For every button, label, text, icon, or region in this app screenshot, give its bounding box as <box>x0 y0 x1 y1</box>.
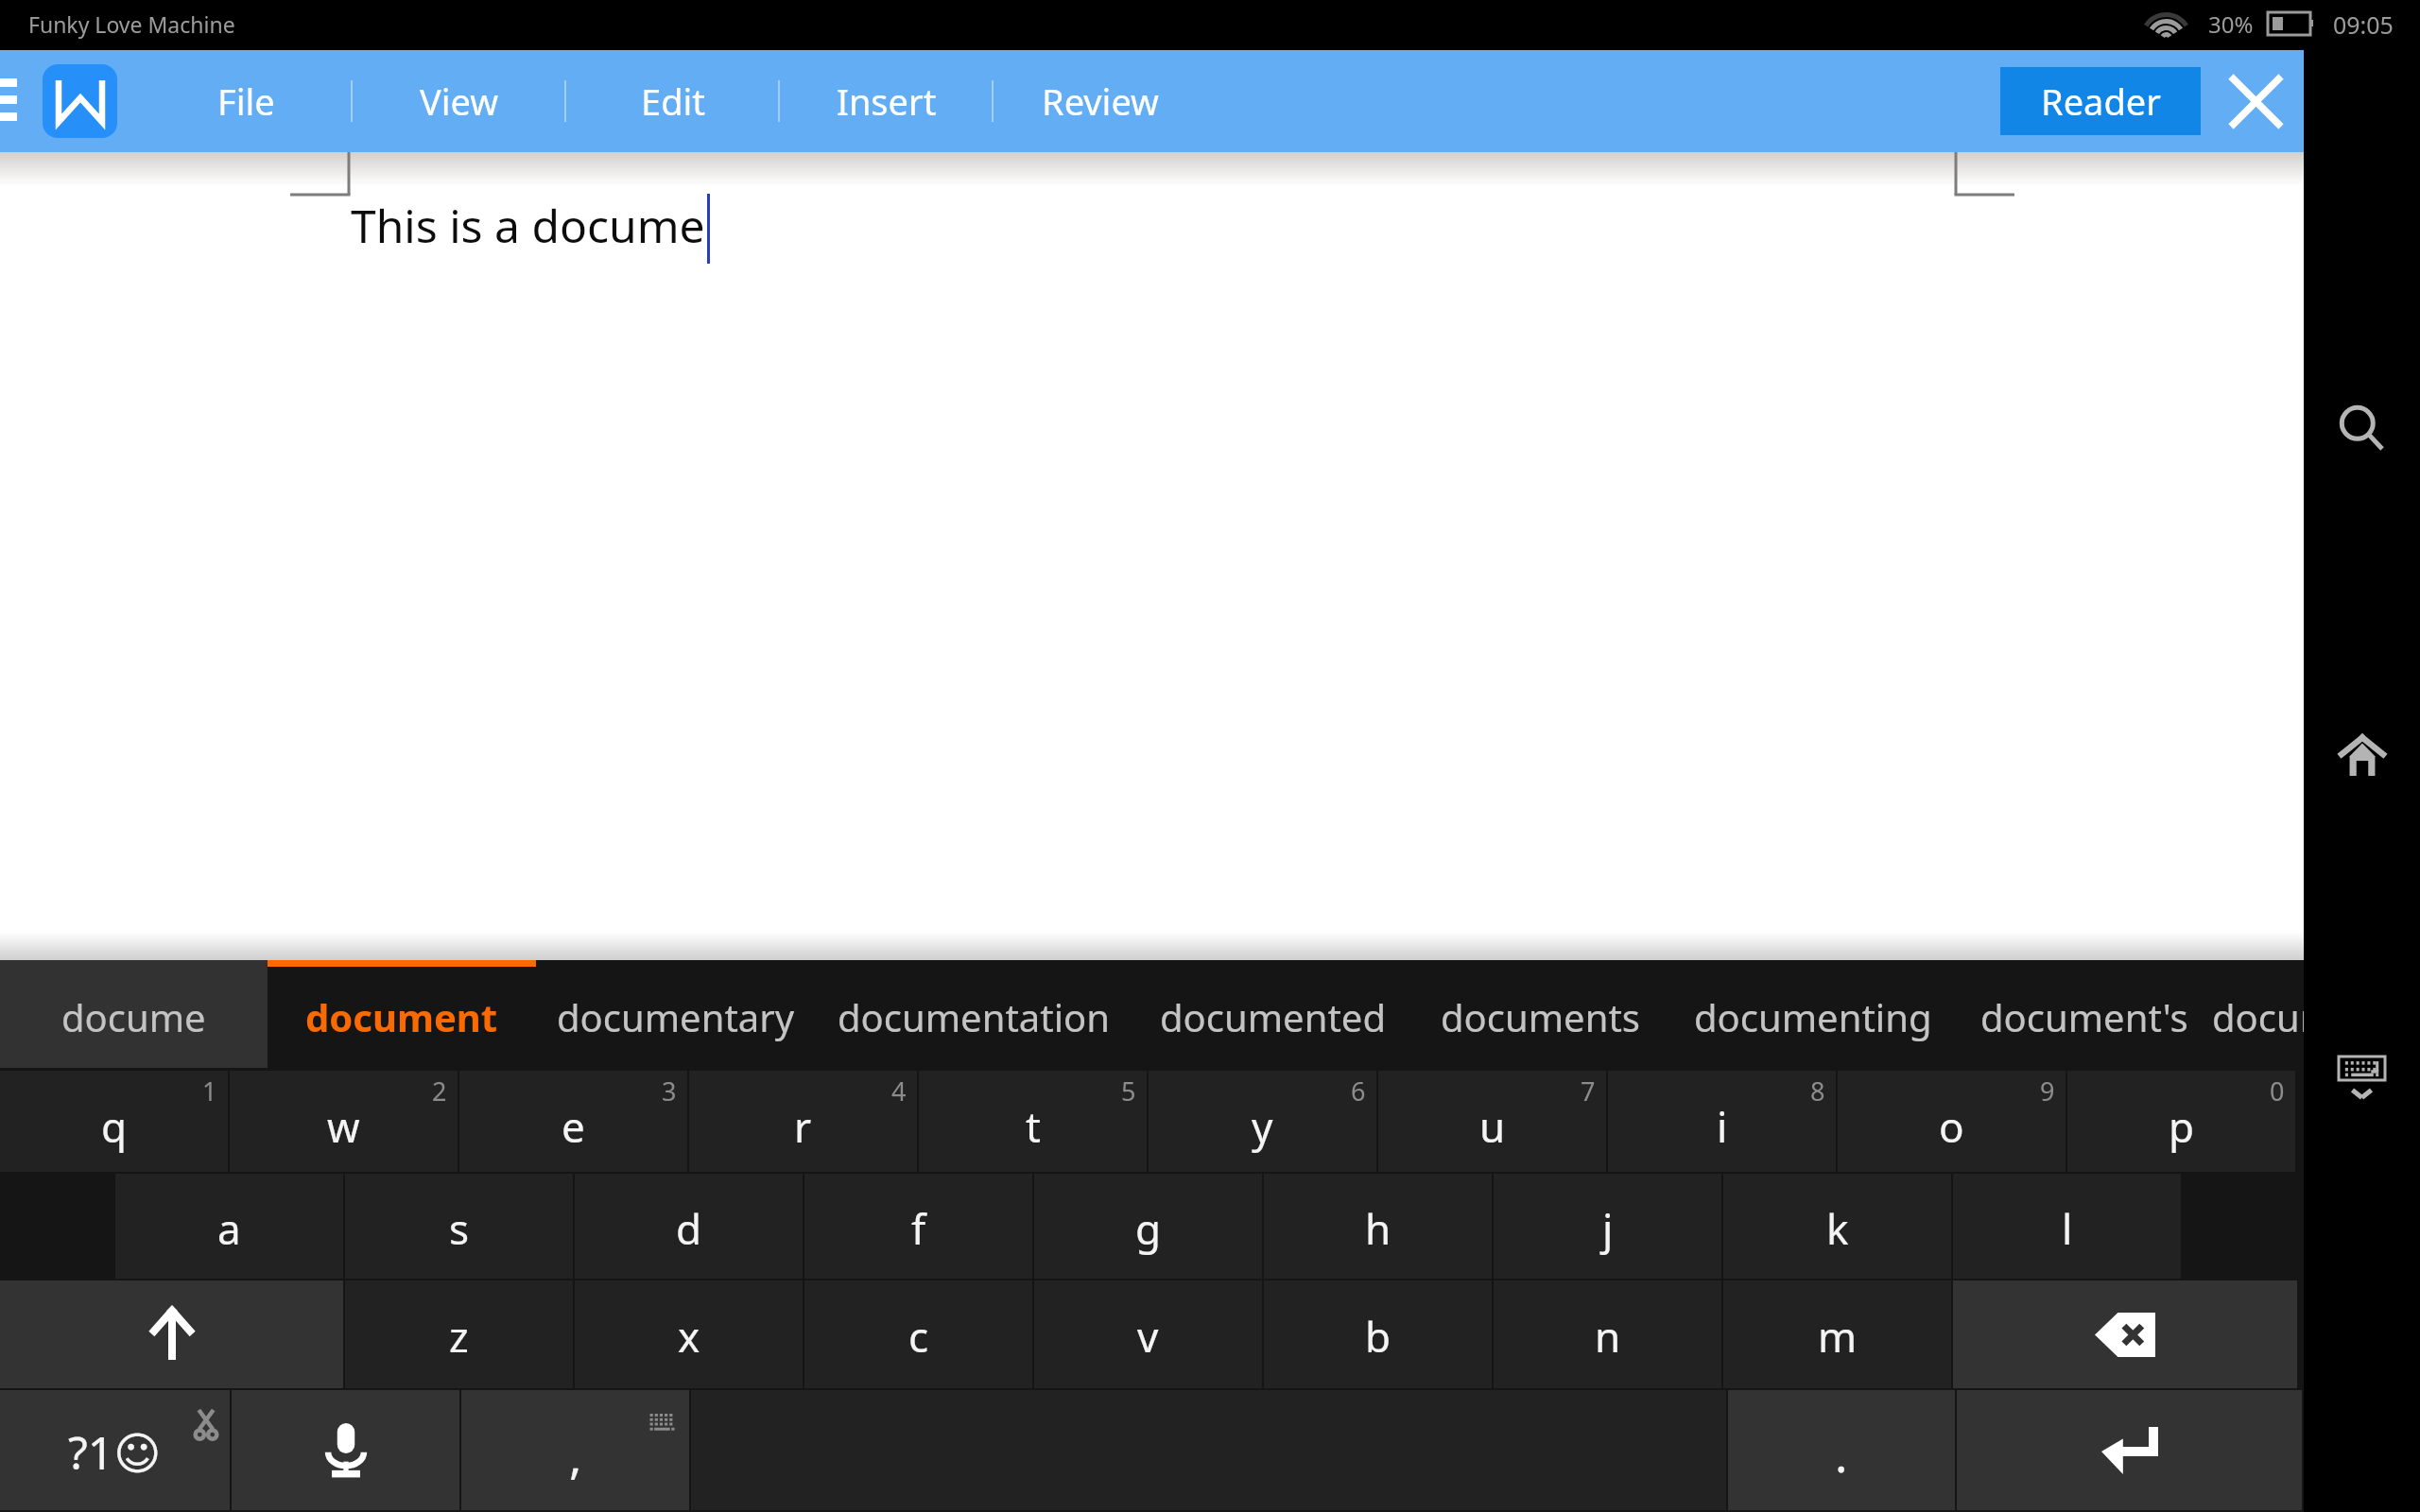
button[interactable]: j <box>1494 1174 1723 1280</box>
staticText: 7 <box>1581 1074 1596 1108</box>
button[interactable]: Insert <box>780 50 994 152</box>
button[interactable]: Review <box>994 50 1207 152</box>
button[interactable]: t <box>919 1071 1149 1174</box>
staticText: File <box>217 77 275 126</box>
staticText: 4 <box>891 1074 907 1108</box>
button[interactable]: d <box>575 1174 804 1280</box>
button[interactable]: documents <box>1412 960 1668 1068</box>
button[interactable]: e <box>459 1071 689 1174</box>
staticText: 8 <box>1810 1074 1825 1108</box>
button[interactable]: documented <box>1132 960 1412 1068</box>
staticText: 3 <box>662 1074 677 1108</box>
button[interactable]: m <box>1723 1280 1953 1390</box>
button[interactable]: Reader <box>2000 67 2201 135</box>
button[interactable]: n <box>1494 1280 1723 1390</box>
staticText: 2 <box>432 1074 447 1108</box>
button[interactable]: c <box>804 1280 1034 1390</box>
staticText: documenting <box>1694 991 1932 1042</box>
staticText: This is a docume <box>351 195 705 256</box>
button[interactable]: Menu <box>0 50 17 152</box>
button[interactable]: Hide keyboard <box>2304 1021 2420 1134</box>
staticText: e <box>562 1098 585 1155</box>
button[interactable]: z <box>345 1280 575 1390</box>
button[interactable]: o <box>1838 1071 2067 1174</box>
button[interactable]: documentation <box>815 960 1132 1068</box>
staticText: documented <box>1160 991 1386 1042</box>
staticText: 0 <box>2270 1074 2285 1108</box>
button[interactable]: documenting <box>1668 960 1957 1068</box>
button[interactable]: k <box>1723 1174 1953 1280</box>
button[interactable]: h <box>1264 1174 1494 1280</box>
button[interactable]: f <box>804 1174 1034 1280</box>
staticText: document's <box>1980 991 2188 1042</box>
staticText: w <box>327 1098 360 1155</box>
staticText: , <box>569 1424 582 1488</box>
button[interactable]: document's <box>1957 960 2212 1068</box>
button[interactable]: u <box>1378 1071 1608 1174</box>
staticText: l <box>2062 1200 2073 1257</box>
staticText: document <box>305 991 498 1042</box>
staticText: m <box>1818 1308 1858 1365</box>
button[interactable]: Close <box>2217 50 2294 152</box>
button[interactable]: y <box>1149 1071 1378 1174</box>
staticText: . <box>1835 1422 1848 1486</box>
staticText: z <box>449 1308 469 1365</box>
staticText: s <box>449 1200 470 1257</box>
button[interactable]: WPS Writer <box>43 64 117 138</box>
staticText: u <box>1479 1098 1506 1155</box>
staticText: 1 <box>202 1074 217 1108</box>
button[interactable]: docume <box>0 960 268 1068</box>
button[interactable]: Voice input <box>232 1390 461 1512</box>
staticText: o <box>1939 1098 1964 1155</box>
staticText: 09:05 <box>2333 9 2394 41</box>
button[interactable]: . <box>1728 1390 1957 1512</box>
button[interactable]: Symbols <box>0 1390 232 1512</box>
staticText: t <box>1026 1098 1041 1155</box>
button[interactable]: View <box>353 50 566 152</box>
button[interactable]: File <box>139 50 353 152</box>
staticText: Review <box>1042 77 1159 126</box>
button[interactable]: Home <box>2304 698 2420 812</box>
staticText: a <box>217 1200 241 1257</box>
staticText: 30% <box>2208 9 2254 40</box>
staticText: Insert <box>837 77 937 126</box>
button[interactable]: r <box>689 1071 919 1174</box>
button[interactable]: w <box>230 1071 459 1174</box>
button[interactable]: Backspace <box>1953 1280 2299 1390</box>
staticText: i <box>1717 1098 1728 1155</box>
staticText: r <box>794 1098 812 1155</box>
staticText: p <box>2169 1098 2195 1155</box>
button[interactable]: document <box>268 960 536 1068</box>
button[interactable]: documentary <box>536 960 815 1068</box>
staticText: q <box>101 1098 128 1155</box>
button[interactable]: a <box>115 1174 345 1280</box>
button[interactable]: s <box>345 1174 575 1280</box>
button[interactable]: x <box>575 1280 804 1390</box>
staticText: 5 <box>1121 1074 1136 1108</box>
button[interactable]: Enter <box>1957 1390 2304 1512</box>
staticText: g <box>1135 1200 1162 1257</box>
staticText: v <box>1137 1308 1159 1365</box>
staticText: Funky Love Machine <box>28 9 235 39</box>
staticText: c <box>908 1308 929 1365</box>
button[interactable]: v <box>1034 1280 1264 1390</box>
staticText: ?1☺ <box>68 1421 162 1483</box>
button[interactable]: Search <box>2304 371 2420 485</box>
staticText: h <box>1365 1200 1391 1257</box>
staticText: documentaries <box>2212 991 2304 1042</box>
button[interactable]: documentaries <box>2212 960 2304 1068</box>
button[interactable]: Edit <box>566 50 780 152</box>
button[interactable]: l <box>1953 1174 2183 1280</box>
button[interactable]: q <box>0 1071 230 1174</box>
staticText: Reader <box>2041 77 2161 126</box>
button[interactable]: g <box>1034 1174 1264 1280</box>
staticText: documentation <box>838 991 1110 1042</box>
button[interactable]: , <box>461 1390 691 1512</box>
staticText: 9 <box>2040 1074 2055 1108</box>
button[interactable]: p <box>2067 1071 2297 1174</box>
staticText: b <box>1365 1308 1391 1365</box>
button[interactable]: b <box>1264 1280 1494 1390</box>
button[interactable]: Shift <box>0 1280 345 1390</box>
button[interactable]: i <box>1608 1071 1838 1174</box>
